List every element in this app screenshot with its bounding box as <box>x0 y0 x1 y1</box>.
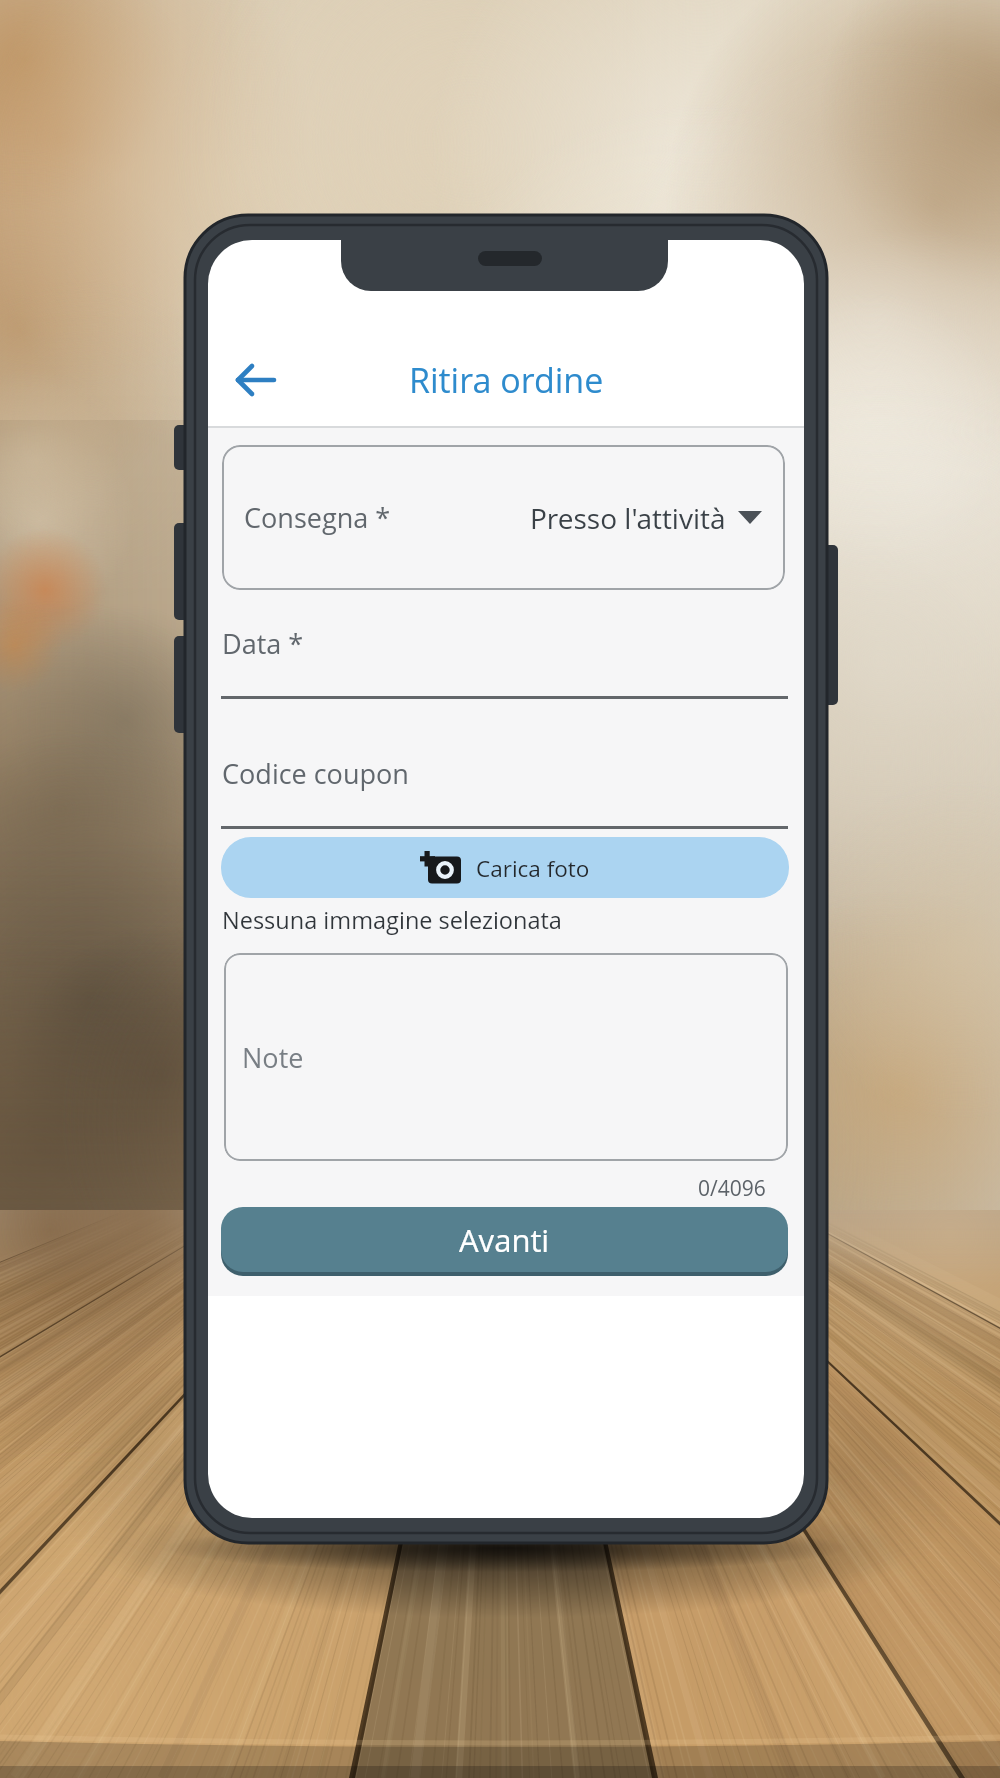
button[interactable]: Carica foto <box>221 837 789 898</box>
staticText: Carica foto <box>476 853 590 884</box>
button[interactable]: Consegna * <box>222 445 785 590</box>
staticText: Note <box>242 1039 304 1076</box>
staticText: Ritira ordine <box>409 357 604 403</box>
button[interactable]: Avanti <box>221 1207 788 1272</box>
staticText: Codice coupon <box>222 755 409 792</box>
button[interactable] <box>226 353 286 407</box>
staticText: Avanti <box>459 1219 550 1261</box>
staticText: Presso l'attività <box>530 499 726 537</box>
staticText: 0/4096 <box>698 1174 766 1203</box>
staticText: Data * <box>222 625 304 662</box>
button[interactable]: Data * <box>221 620 788 700</box>
staticText: Consegna * <box>244 499 391 536</box>
staticText: Nessuna immagine selezionata <box>222 904 562 936</box>
button[interactable]: Codice coupon <box>221 750 788 830</box>
button[interactable]: Note <box>224 953 788 1161</box>
